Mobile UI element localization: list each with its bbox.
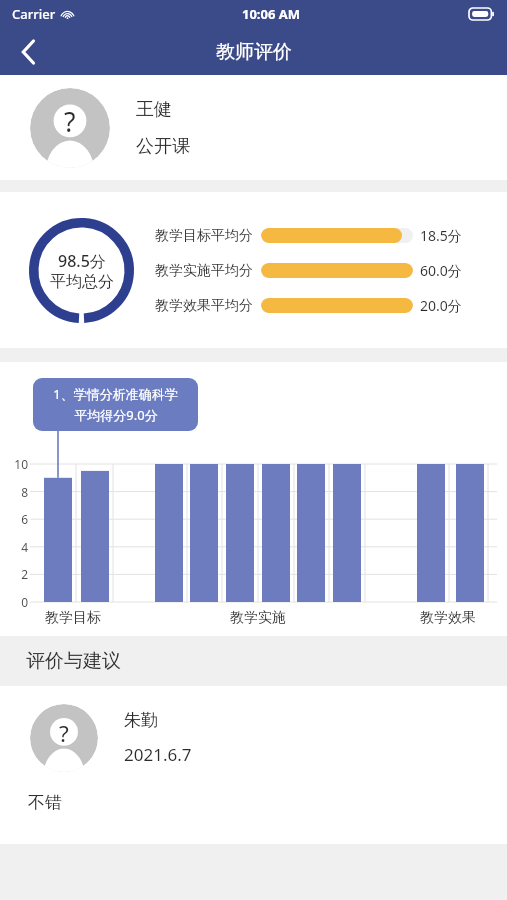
staticText: 10	[6, 456, 28, 472]
button[interactable]: 1、学情分析准确科学	[33, 378, 198, 431]
staticText: 1、学情分析准确科学	[53, 385, 178, 403]
staticText: 公开课	[136, 135, 190, 158]
staticText: 60.0分	[420, 261, 462, 280]
staticText: 20.0分	[420, 296, 462, 315]
staticText: Carrier	[12, 5, 56, 23]
staticText: 教学目标	[45, 609, 101, 627]
staticText: ?	[59, 718, 69, 749]
staticText: 6	[6, 511, 28, 527]
staticText: 教学实施平均分	[155, 262, 253, 280]
staticText: 不错	[28, 792, 62, 813]
staticText: 教学效果平均分	[155, 297, 253, 315]
button[interactable]: Back	[6, 30, 50, 74]
button[interactable]: ?	[0, 75, 507, 180]
button[interactable]: ?	[0, 686, 507, 844]
staticText: ?	[64, 104, 76, 140]
staticText: 98.5分	[58, 250, 106, 272]
staticText: 8	[6, 484, 28, 500]
staticText: 18.5分	[420, 226, 462, 245]
staticText: 教学实施	[230, 609, 286, 627]
staticText: 王健	[136, 98, 172, 121]
staticText: 教学效果	[420, 609, 476, 627]
staticText: 教师评价	[216, 40, 292, 64]
staticText: 0	[6, 594, 28, 610]
staticText: 教学目标平均分	[155, 227, 253, 245]
staticText: 2	[6, 566, 28, 582]
staticText: 评价与建议	[26, 649, 121, 673]
staticText: 10:06 AM	[242, 5, 301, 23]
staticText: 朱勤	[124, 710, 158, 731]
staticText: 2021.6.7	[124, 743, 192, 766]
staticText: 平均总分	[50, 272, 114, 292]
staticText: 平均得分9.0分	[74, 406, 158, 424]
staticText: 4	[6, 539, 28, 555]
